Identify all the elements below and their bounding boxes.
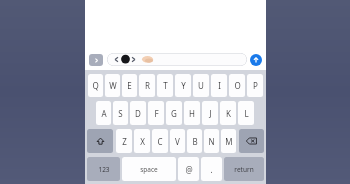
button[interactable]: A: [96, 101, 111, 125]
button[interactable]: P: [247, 74, 263, 97]
button[interactable]: O: [229, 74, 245, 97]
button[interactable]: K: [220, 101, 236, 125]
staticText: space: [140, 165, 158, 174]
staticText: P: [253, 80, 258, 91]
button[interactable]: Z: [116, 129, 132, 153]
button[interactable]: U: [193, 74, 209, 97]
staticText: return: [234, 165, 254, 174]
button[interactable]: S: [113, 101, 128, 125]
staticText: W: [109, 80, 117, 91]
staticText: E: [127, 80, 132, 91]
staticText: R: [145, 80, 150, 91]
button[interactable]: Q: [88, 74, 103, 97]
button[interactable]: R: [139, 74, 155, 97]
button[interactable]: E: [122, 74, 137, 97]
button[interactable]: B: [187, 129, 202, 153]
staticText: S: [118, 108, 123, 119]
button[interactable]: H: [184, 101, 200, 125]
staticText: M: [225, 136, 233, 147]
staticText: C: [157, 136, 163, 147]
button[interactable]: space: [122, 157, 176, 181]
button[interactable]: Backspace: [239, 129, 264, 153]
button[interactable]: J: [202, 101, 218, 125]
button[interactable]: N: [204, 129, 219, 153]
button[interactable]: M: [221, 129, 236, 153]
staticText: D: [135, 108, 141, 119]
staticText: 123: [98, 165, 110, 174]
staticText: X: [140, 136, 145, 147]
staticText: G: [171, 108, 177, 119]
staticText: F: [154, 108, 159, 119]
button[interactable]: return: [224, 157, 264, 181]
staticText: V: [175, 136, 180, 147]
button[interactable]: G: [166, 101, 182, 125]
button[interactable]: L: [238, 101, 254, 125]
staticText: K: [226, 108, 231, 119]
staticText: I: [218, 80, 221, 91]
button[interactable]: Expand apps: [89, 54, 103, 66]
button[interactable]: D: [130, 101, 146, 125]
staticText: J: [209, 108, 212, 119]
staticText: N: [208, 136, 215, 147]
button[interactable]: V: [170, 129, 185, 153]
button[interactable]: .: [201, 157, 222, 181]
button[interactable]: Y: [175, 74, 191, 97]
button[interactable]: 123: [87, 157, 120, 181]
button[interactable]: [107, 53, 247, 66]
button[interactable]: W: [105, 74, 120, 97]
staticText: B: [192, 136, 198, 147]
button[interactable]: X: [134, 129, 150, 153]
button[interactable]: @: [178, 157, 199, 181]
staticText: L: [244, 108, 249, 119]
staticText: Q: [92, 80, 99, 91]
button[interactable]: Send: [250, 54, 262, 66]
staticText: U: [198, 80, 204, 91]
staticText: @: [185, 164, 193, 175]
button[interactable]: C: [152, 129, 168, 153]
staticText: A: [101, 108, 107, 119]
staticText: Y: [181, 80, 186, 91]
staticText: .: [210, 164, 213, 175]
staticText: H: [189, 108, 195, 119]
staticText: T: [163, 80, 168, 91]
button[interactable]: I: [211, 74, 227, 97]
button[interactable]: Shift: [87, 129, 113, 153]
staticText: Z: [122, 136, 127, 147]
staticText: O: [234, 80, 241, 91]
button[interactable]: T: [157, 74, 173, 97]
button[interactable]: F: [148, 101, 164, 125]
